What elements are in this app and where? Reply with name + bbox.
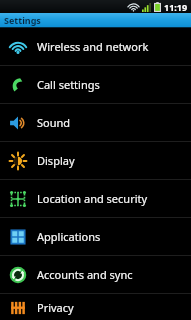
button[interactable]: Applications [0,218,191,255]
staticText: Display [37,153,75,168]
button[interactable]: Location and security [0,180,191,217]
staticText: Privacy [37,300,74,315]
staticText: 11:19 [164,1,188,13]
button[interactable]: Sound [0,104,191,141]
button[interactable]: Privacy [0,294,191,320]
staticText: Sound [37,115,71,130]
staticText: Settings [4,14,41,26]
staticText: Applications [37,229,101,244]
button[interactable]: Display [0,142,191,179]
button[interactable]: Wireless and network [0,28,191,65]
button[interactable]: Call settings [0,66,191,103]
staticText: Location and security [37,191,148,206]
button[interactable]: Accounts and sync [0,256,191,293]
staticText: Wireless and network [37,39,149,54]
staticText: Call settings [37,77,100,92]
staticText: Accounts and sync [37,267,133,282]
